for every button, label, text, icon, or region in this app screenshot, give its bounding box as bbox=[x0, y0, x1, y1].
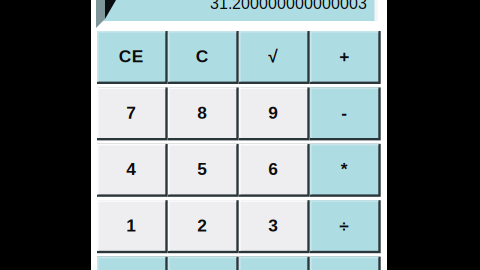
staticText: + bbox=[339, 47, 349, 66]
staticText: 6 bbox=[268, 159, 278, 179]
button[interactable]: 0 bbox=[97, 257, 168, 270]
staticText: 3 bbox=[268, 216, 278, 235]
button[interactable]: CE bbox=[97, 31, 168, 84]
button[interactable]: 7 bbox=[97, 87, 168, 140]
staticText: C bbox=[196, 47, 209, 66]
button[interactable]: 8 bbox=[168, 87, 239, 140]
button[interactable]: C bbox=[168, 31, 239, 84]
button[interactable]: ÷ bbox=[310, 200, 381, 253]
staticText: 8 bbox=[197, 103, 207, 122]
staticText: - bbox=[341, 103, 347, 122]
staticText: 1 bbox=[126, 216, 136, 235]
button[interactable]: + bbox=[310, 31, 381, 84]
button[interactable]: % bbox=[310, 257, 381, 270]
staticText: 7 bbox=[126, 103, 136, 122]
staticText: 4 bbox=[126, 159, 136, 179]
staticText: 9 bbox=[268, 103, 278, 122]
button[interactable]: - bbox=[310, 87, 381, 140]
button[interactable]: 5 bbox=[168, 144, 239, 197]
button[interactable]: . bbox=[168, 257, 239, 270]
staticText: 5 bbox=[197, 159, 207, 179]
button[interactable]: 2 bbox=[168, 200, 239, 253]
staticText: ÷ bbox=[339, 216, 349, 235]
button[interactable]: 9 bbox=[239, 87, 310, 140]
button[interactable]: √ bbox=[239, 31, 310, 84]
button[interactable]: 1 bbox=[97, 200, 168, 253]
staticText: 31.200000000000003 bbox=[210, 0, 367, 12]
button[interactable]: = bbox=[239, 257, 310, 270]
button[interactable]: 3 bbox=[239, 200, 310, 253]
button[interactable]: * bbox=[310, 144, 381, 197]
staticText: CE bbox=[119, 47, 144, 66]
staticText: 2 bbox=[197, 216, 207, 235]
staticText: * bbox=[341, 159, 348, 179]
staticText: √ bbox=[268, 47, 278, 66]
button[interactable]: 4 bbox=[97, 144, 168, 197]
button[interactable]: 6 bbox=[239, 144, 310, 197]
